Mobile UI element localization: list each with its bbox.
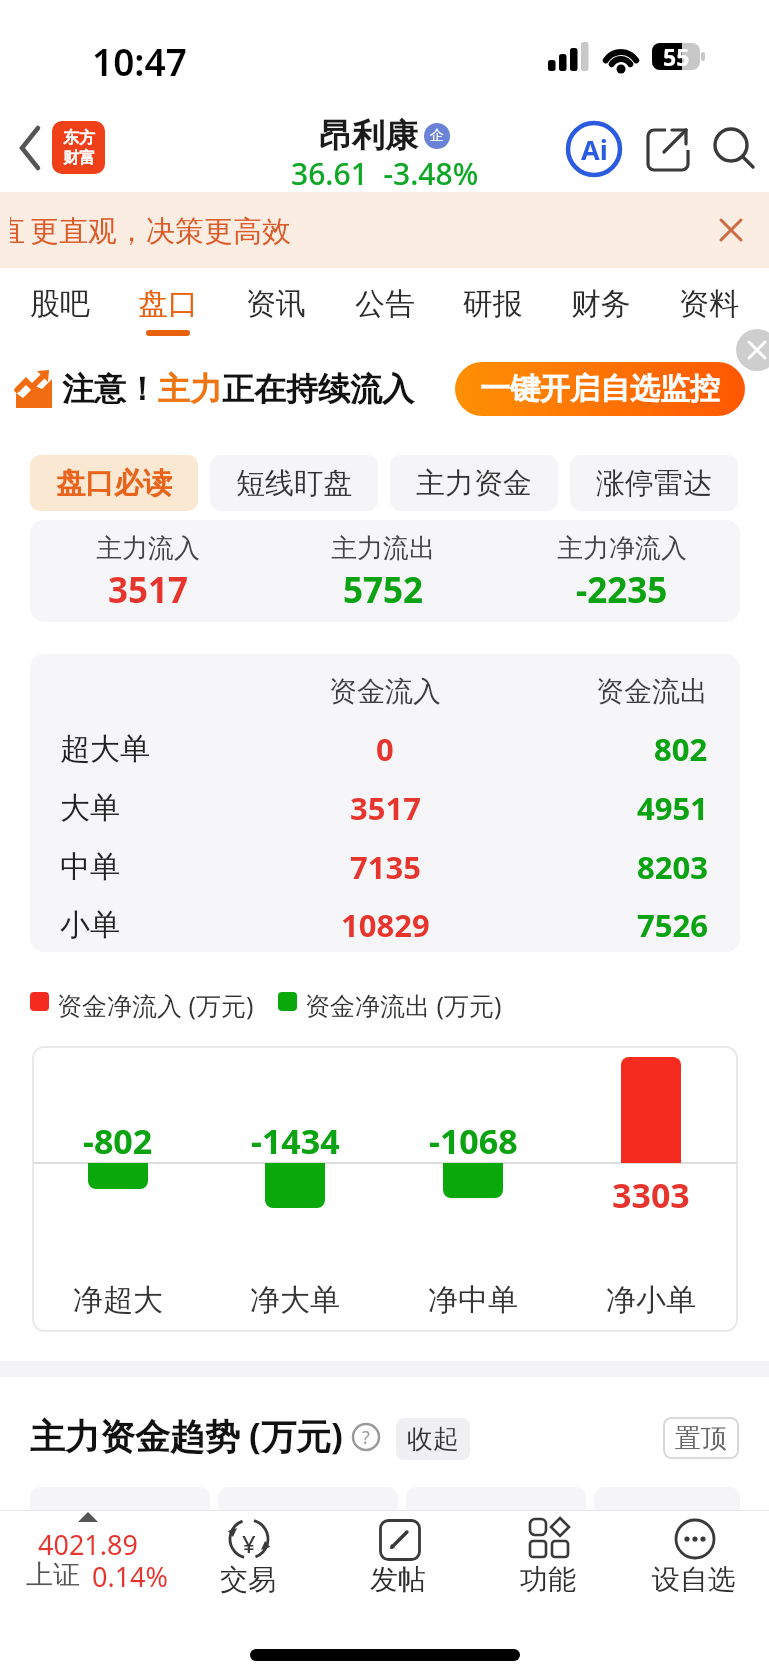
- staticText: 8203: [637, 846, 708, 888]
- button[interactable]: [594, 1487, 740, 1527]
- staticText: -1068: [429, 1118, 518, 1164]
- staticText: 净中单: [428, 1281, 518, 1319]
- staticText: 净超大: [73, 1281, 163, 1319]
- button[interactable]: [406, 1487, 586, 1527]
- staticText: 大单: [60, 789, 120, 827]
- button[interactable]: 盘口: [138, 268, 198, 340]
- staticText: 净小单: [606, 1281, 696, 1319]
- button[interactable]: 研报: [463, 268, 523, 340]
- button[interactable]: [488, 1510, 608, 1602]
- button[interactable]: [10, 1510, 170, 1600]
- staticText: ¥: [242, 1527, 256, 1560]
- staticText: 36.61 -3.48%: [291, 153, 479, 194]
- staticText: 资金流入: [329, 674, 441, 709]
- staticText: 802: [654, 728, 708, 770]
- staticText: 10:47: [92, 36, 187, 86]
- staticText: 功能: [520, 1562, 576, 1597]
- button[interactable]: [711, 210, 751, 250]
- staticText: 3517: [108, 566, 189, 614]
- button[interactable]: 短线盯盘: [210, 455, 378, 511]
- staticText: 发帖: [370, 1562, 426, 1597]
- staticText: 5752: [343, 566, 424, 614]
- button[interactable]: [338, 1510, 458, 1602]
- button[interactable]: 东方: [52, 121, 105, 174]
- staticText: 涨停雷达: [596, 465, 712, 502]
- staticText: -2235: [576, 566, 668, 614]
- staticText: 主力流出: [331, 532, 435, 565]
- staticText: 股吧: [30, 285, 90, 323]
- staticText: 资金净流入 (万元): [57, 988, 254, 1022]
- button[interactable]: Ai: [565, 120, 623, 178]
- staticText: 研报: [463, 285, 523, 323]
- staticText: 4951: [637, 787, 708, 829]
- staticText: 7135: [350, 846, 421, 888]
- button[interactable]: [188, 1510, 308, 1602]
- staticText: 主力净流入: [557, 532, 687, 565]
- button[interactable]: [634, 1510, 754, 1602]
- staticText: 3517: [350, 787, 421, 829]
- button[interactable]: 涨停雷达: [570, 455, 738, 511]
- staticText: 设自选: [652, 1562, 736, 1597]
- staticText: 短线盯盘: [236, 465, 352, 502]
- staticText: 企: [430, 127, 444, 145]
- button[interactable]: 一键开启自选监控: [455, 362, 745, 416]
- staticText: 主力: [158, 369, 222, 409]
- staticText: 超大单: [60, 730, 150, 768]
- staticText: 资金流出: [596, 674, 708, 709]
- staticText: 资讯: [246, 285, 306, 323]
- staticText: 交易: [220, 1562, 276, 1597]
- staticText: 4021.89: [38, 1526, 138, 1563]
- staticText: ?: [362, 1425, 370, 1450]
- staticText: 置顶: [675, 1422, 727, 1455]
- staticText: 东方: [63, 128, 95, 148]
- button[interactable]: 盘口必读: [30, 455, 198, 511]
- button[interactable]: 收起: [396, 1418, 470, 1460]
- staticText: 财富: [63, 148, 95, 168]
- staticText: 更直观，决策更高效: [30, 213, 291, 250]
- staticText: -802: [83, 1118, 153, 1164]
- button[interactable]: [644, 124, 694, 174]
- staticText: 盘口必读: [56, 465, 172, 502]
- staticText: -1434: [251, 1118, 340, 1164]
- staticText: 0: [376, 728, 394, 770]
- staticText: 盘口: [138, 285, 198, 323]
- button[interactable]: 主力资金: [390, 455, 558, 511]
- staticText: 财务: [571, 285, 631, 323]
- button[interactable]: 资讯: [246, 268, 306, 340]
- staticText: 直: [10, 213, 11, 250]
- staticText: 一键开启自选监控: [480, 370, 720, 408]
- staticText: 收起: [407, 1423, 459, 1456]
- button[interactable]: [8, 118, 56, 178]
- button[interactable]: 股吧: [30, 268, 90, 340]
- staticText: 资金净流出 (万元): [305, 988, 502, 1022]
- button[interactable]: [710, 124, 760, 174]
- staticText: 3303: [612, 1172, 690, 1218]
- staticText: Ai: [581, 131, 608, 168]
- staticText: 主力流入: [96, 532, 200, 565]
- staticText: 主力资金趋势 (万元): [30, 1412, 343, 1460]
- staticText: 资料: [679, 285, 739, 323]
- staticText: 注意！: [62, 369, 158, 409]
- button[interactable]: 资料: [679, 268, 739, 340]
- staticText: 10829: [341, 904, 430, 946]
- staticText: 0.14%: [92, 1558, 169, 1595]
- staticText: 小单: [60, 906, 120, 944]
- button[interactable]: 公告: [355, 268, 415, 340]
- button[interactable]: 财务: [571, 268, 631, 340]
- staticText: 上证: [26, 1558, 80, 1592]
- staticText: 正在持续流入: [222, 369, 414, 409]
- staticText: 55: [663, 41, 690, 72]
- button[interactable]: ?: [352, 1423, 380, 1451]
- button[interactable]: 置顶: [663, 1417, 739, 1459]
- staticText: 7526: [637, 904, 708, 946]
- staticText: 净大单: [250, 1281, 340, 1319]
- staticText: 公告: [355, 285, 415, 323]
- staticText: 主力资金: [416, 465, 532, 502]
- staticText: 中单: [60, 848, 120, 886]
- button[interactable]: [30, 1487, 210, 1527]
- button[interactable]: [218, 1487, 398, 1527]
- staticText: 昂利康: [319, 115, 418, 157]
- button[interactable]: [736, 329, 769, 371]
